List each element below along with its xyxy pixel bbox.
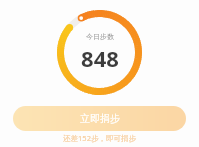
staticText: 今日步数 xyxy=(86,32,114,41)
staticText: 还差152步，即可捐步 xyxy=(63,133,136,143)
staticText: 848 xyxy=(81,43,119,73)
button[interactable]: 立即捐步 xyxy=(13,106,186,131)
staticText: 立即捐步 xyxy=(80,112,120,125)
